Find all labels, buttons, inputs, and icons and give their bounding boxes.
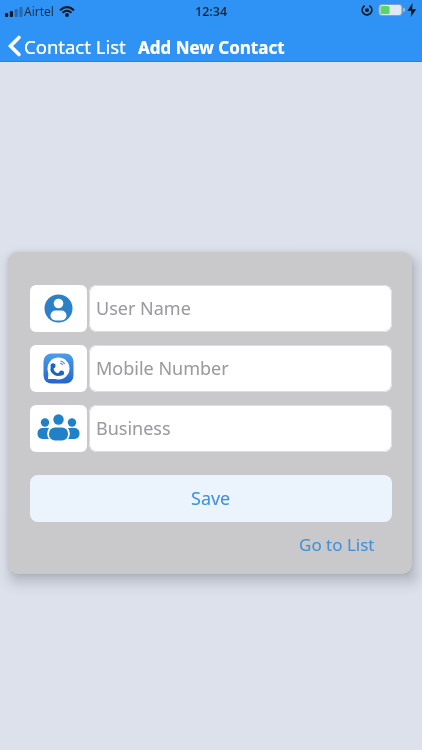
button[interactable]: Mobile Number: [89, 345, 392, 392]
staticText: Airtel: [24, 3, 54, 19]
button[interactable]: Business: [89, 405, 392, 452]
staticText: Mobile Number: [96, 356, 229, 381]
button[interactable]: Go to List: [287, 531, 375, 557]
staticText: User Name: [96, 296, 191, 321]
button[interactable]: User Name: [89, 285, 392, 332]
staticText: Add New Contact: [138, 36, 285, 59]
staticText: Business: [96, 416, 171, 441]
staticText: Contact List: [24, 34, 126, 59]
staticText: Go to List: [299, 533, 375, 556]
button[interactable]: Save: [30, 475, 392, 522]
staticText: 12:34: [195, 3, 228, 20]
button[interactable]: Contact List: [4, 32, 128, 60]
staticText: Save: [191, 486, 231, 511]
